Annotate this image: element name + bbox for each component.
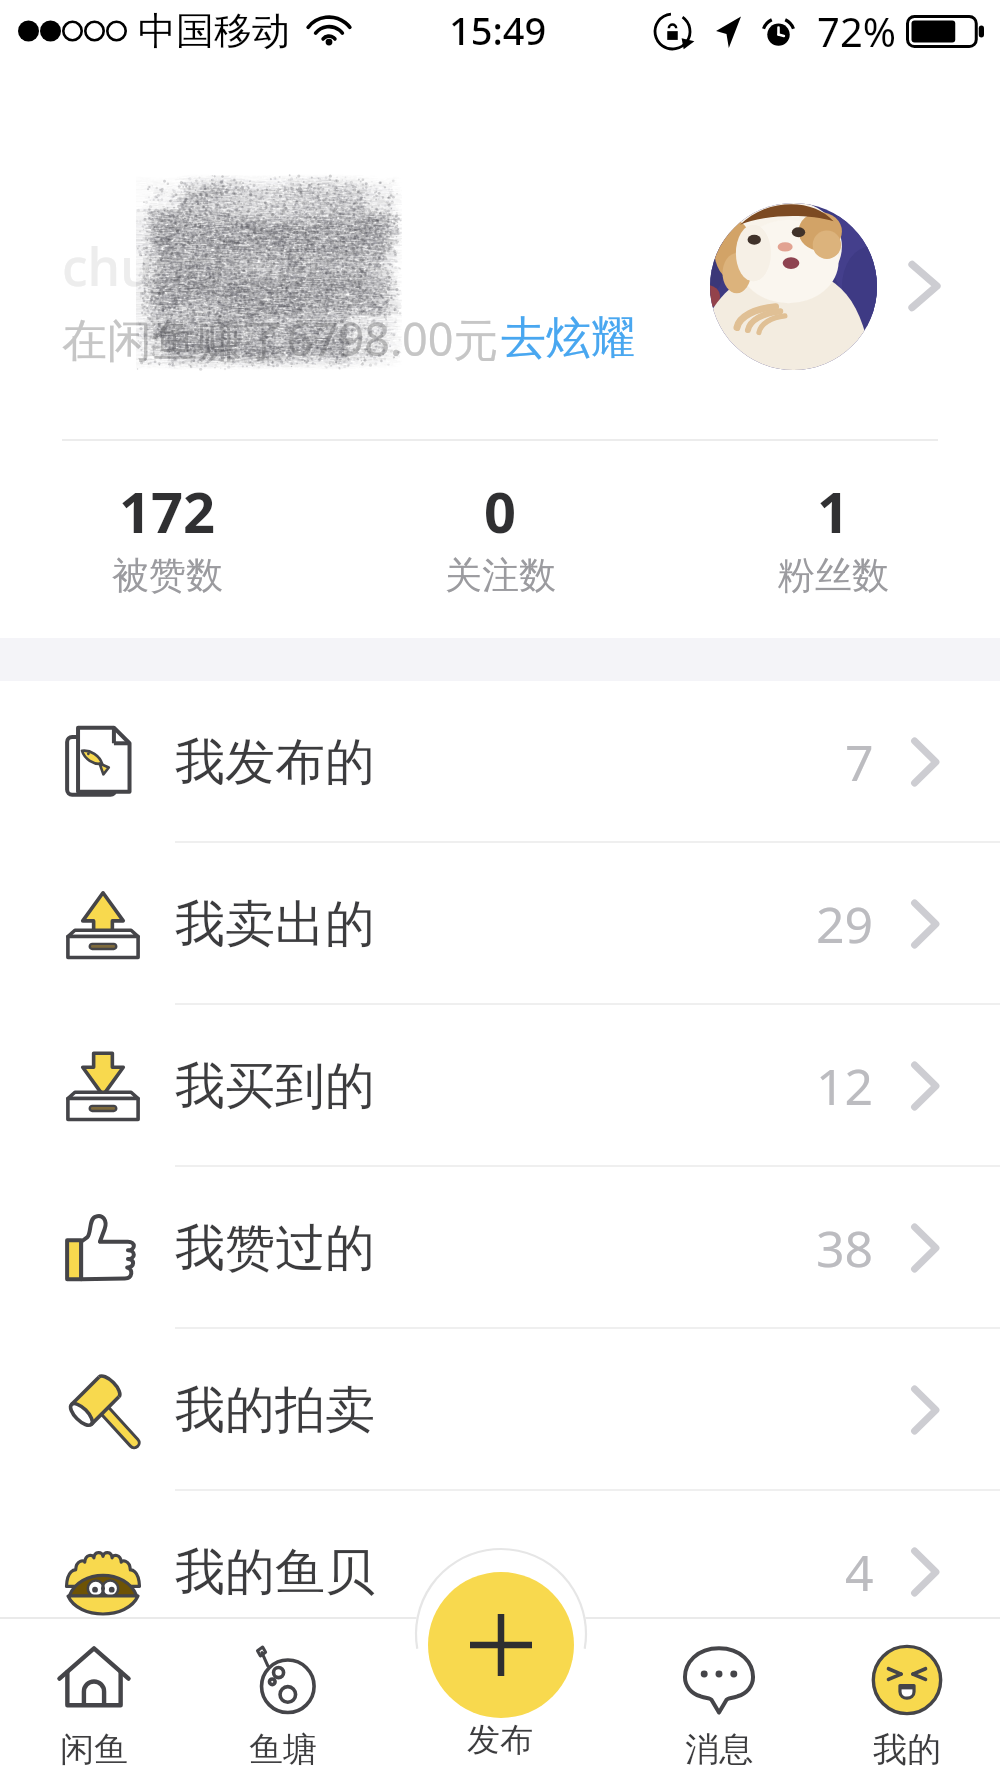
staticText: 1 <box>817 473 850 549</box>
staticText: 29 <box>816 890 874 958</box>
button[interactable]: 1 <box>667 462 1000 622</box>
staticText: 12 <box>816 1052 874 1120</box>
button[interactable]: 我买到的 <box>0 1005 1000 1167</box>
button[interactable]: 闲鱼 <box>4 1618 184 1775</box>
staticText: 在闲鱼赚了6798.00元 <box>62 308 499 369</box>
button[interactable]: 我的 <box>817 1618 997 1775</box>
staticText: 粉丝数 <box>778 552 889 599</box>
button[interactable]: chunchuan8 <box>0 62 1000 441</box>
staticText: 15:49 <box>449 4 547 56</box>
staticText: 鱼塘 <box>249 1728 317 1771</box>
staticText: 被赞数 <box>112 552 223 599</box>
staticText: chunchuan8 <box>62 230 369 301</box>
staticText: 我买到的 <box>175 1055 375 1118</box>
staticText: 我的 <box>873 1728 941 1771</box>
staticText: 4 <box>845 1538 874 1606</box>
button[interactable]: 去炫耀 <box>501 310 636 367</box>
staticText: 72% <box>817 4 896 58</box>
button[interactable]: 发布 <box>428 1572 574 1718</box>
staticText: 7 <box>845 728 874 796</box>
button[interactable]: 我发布的 <box>0 681 1000 843</box>
button[interactable]: 消息 <box>629 1618 809 1775</box>
button[interactable]: 我的鱼贝 <box>0 1491 1000 1653</box>
staticText: 发布 <box>467 1719 533 1761</box>
staticText: 38 <box>816 1214 874 1282</box>
button[interactable]: 0 <box>334 462 667 622</box>
staticText: 我卖出的 <box>175 893 375 956</box>
button[interactable]: 我赞过的 <box>0 1167 1000 1329</box>
staticText: 闲鱼 <box>60 1728 128 1771</box>
staticText: 172 <box>119 473 216 549</box>
staticText: 我发布的 <box>175 731 375 794</box>
button[interactable]: 172 <box>0 462 334 622</box>
staticText: 我的鱼贝 <box>175 1541 375 1604</box>
staticText: 中国移动 <box>138 7 290 55</box>
staticText: 消息 <box>685 1728 753 1771</box>
staticText: 我赞过的 <box>175 1217 375 1280</box>
button[interactable]: 我的拍卖 <box>0 1329 1000 1491</box>
staticText: 0 <box>484 473 517 549</box>
staticText: 关注数 <box>445 552 556 599</box>
button[interactable]: 鱼塘 <box>193 1618 373 1775</box>
button[interactable]: 我卖出的 <box>0 843 1000 1005</box>
staticText: 我的拍卖 <box>175 1379 375 1442</box>
